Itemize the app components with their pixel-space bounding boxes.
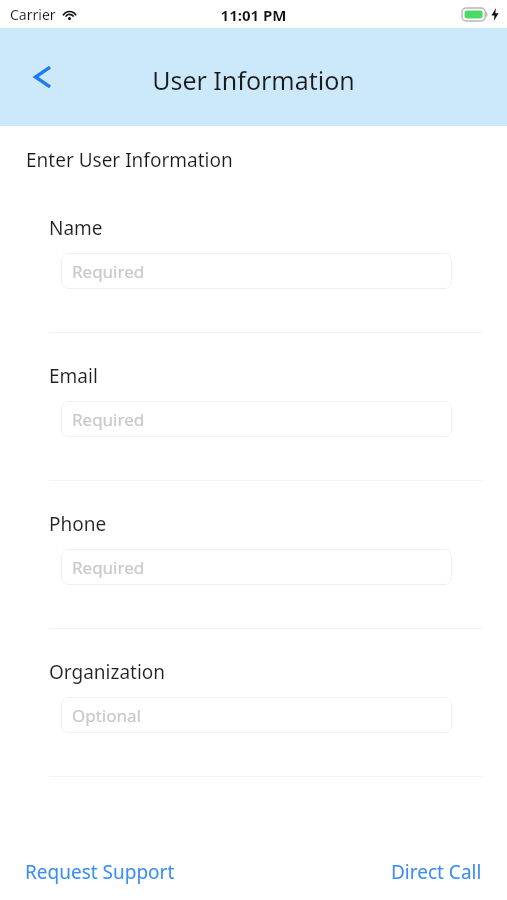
- staticText: Phone: [49, 511, 107, 537]
- staticText: Enter User Information: [26, 147, 233, 173]
- button[interactable]: Request Support: [10, 852, 190, 892]
- staticText: Carrier: [10, 5, 56, 24]
- staticText: User Information: [0, 63, 507, 97]
- staticText: Required: [72, 408, 145, 431]
- staticText: Optional: [72, 704, 141, 727]
- button[interactable]: Direct Call: [376, 852, 497, 892]
- button[interactable]: Required: [61, 549, 452, 585]
- staticText: Required: [72, 556, 145, 579]
- staticText: Email: [49, 363, 98, 389]
- staticText: 11:01 PM: [0, 5, 507, 25]
- button[interactable]: Back: [14, 50, 72, 104]
- staticText: Request Support: [25, 859, 175, 885]
- button[interactable]: Required: [61, 253, 452, 289]
- staticText: Required: [72, 260, 145, 283]
- staticText: Name: [49, 215, 103, 241]
- button[interactable]: Optional: [61, 697, 452, 733]
- staticText: Direct Call: [391, 859, 482, 885]
- staticText: Organization: [49, 659, 166, 685]
- button[interactable]: Required: [61, 401, 452, 437]
